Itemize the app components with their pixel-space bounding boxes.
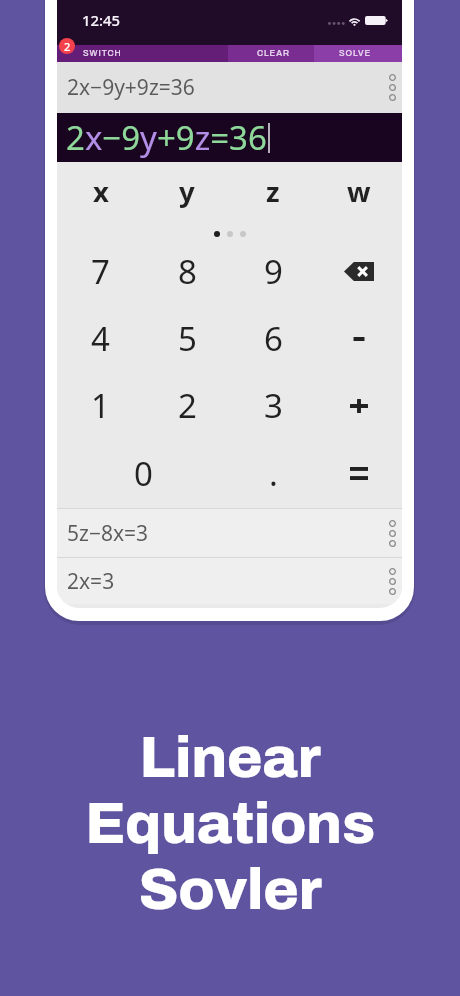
button[interactable]: Equals (316, 439, 402, 508)
button[interactable]: 4 (57, 305, 144, 372)
staticText: 2x=3 (67, 567, 115, 596)
staticText: 6 (264, 316, 283, 361)
staticText: 7 (91, 249, 110, 294)
button[interactable]: 2 notifications (59, 38, 75, 54)
button[interactable]: Minus (316, 305, 402, 372)
button[interactable]: 7 (57, 237, 144, 305)
other: More options (389, 568, 396, 595)
staticText: 3 (264, 383, 283, 428)
staticText: 9 (264, 249, 283, 294)
staticText: 2 (64, 39, 71, 54)
staticText: 2x−9y+9z=36 (67, 73, 195, 102)
staticText: z (266, 173, 280, 210)
other: More options (389, 520, 396, 547)
button[interactable]: Backspace (316, 237, 402, 305)
staticText: 5z−8x=3 (67, 519, 149, 548)
button[interactable]: 1 (57, 372, 144, 439)
button[interactable]: 5z−8x=3 (57, 509, 402, 557)
button[interactable]: 9 (230, 237, 316, 305)
other: More options (389, 74, 396, 101)
staticText: x (93, 173, 109, 210)
staticText: 12:45 (82, 10, 120, 30)
button[interactable]: 5 (144, 305, 230, 372)
button[interactable]: CLEAR (228, 45, 314, 62)
staticText: y (179, 173, 195, 210)
button[interactable]: 2 (144, 372, 230, 439)
staticText: CLEAR (257, 49, 291, 58)
staticText: SWITCH (83, 49, 122, 58)
staticText: . (269, 451, 278, 496)
button[interactable]: z (230, 162, 316, 220)
button[interactable]: x (57, 162, 144, 220)
button[interactable]: SOLVE (314, 45, 402, 62)
staticText: 8 (178, 249, 197, 294)
button[interactable]: Plus (316, 372, 402, 439)
staticText: 5 (178, 316, 197, 361)
staticText: w (347, 173, 371, 210)
staticText: 2x−9y+9z=36 (66, 115, 267, 160)
button[interactable]: SWITCH (57, 45, 228, 62)
staticText: 4 (91, 316, 110, 361)
staticText: 1 (91, 383, 110, 428)
button[interactable]: 2x−9y+9z=36 (57, 62, 402, 113)
staticText: Linear Equations Sovler (0, 727, 460, 921)
button[interactable]: 8 (144, 237, 230, 305)
staticText: 0 (134, 451, 153, 496)
staticText: SOLVE (339, 49, 371, 58)
button[interactable]: 2x=3 (57, 558, 402, 604)
button[interactable]: y (144, 162, 230, 220)
button[interactable]: . (230, 439, 316, 508)
button[interactable]: w (316, 162, 402, 220)
button[interactable]: 6 (230, 305, 316, 372)
button[interactable]: 3 (230, 372, 316, 439)
staticText: 2 (178, 383, 197, 428)
button[interactable]: 0 (57, 439, 230, 508)
